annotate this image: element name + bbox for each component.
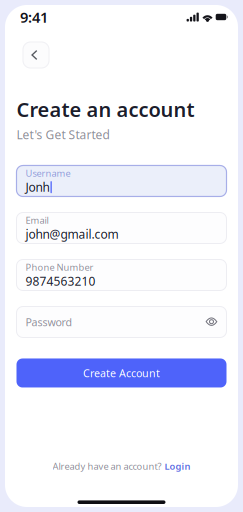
staticText: Email — [25, 214, 48, 226]
staticText: Jonh — [25, 179, 49, 195]
staticText: 9:41 — [20, 7, 48, 27]
staticText: Create Account — [83, 366, 160, 380]
button[interactable]: Create Account — [16, 358, 226, 387]
staticText: Let's Get Started — [16, 127, 109, 142]
staticText: Username — [25, 167, 70, 179]
staticText: Already have an account? — [52, 460, 161, 472]
staticText: Login — [164, 460, 190, 472]
button[interactable]: Already have an account? — [52, 460, 190, 472]
staticText: Create an account — [16, 96, 194, 123]
staticText: john@gmail.com — [25, 226, 118, 242]
staticText: Phone Number — [25, 261, 93, 273]
staticText: 9874563210 — [25, 273, 95, 289]
staticText: Password — [25, 315, 72, 329]
button[interactable]: Back — [23, 42, 49, 68]
